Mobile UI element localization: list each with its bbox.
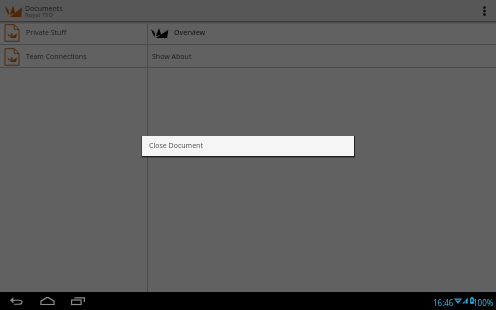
button[interactable]: Close Document <box>142 136 354 156</box>
staticText: Show About <box>152 52 192 62</box>
button[interactable]: Overview <box>148 21 496 45</box>
staticText: Documents <box>25 4 63 14</box>
staticText: Close Document <box>149 141 203 151</box>
staticText: Royal TSD <box>25 11 53 19</box>
staticText: Overview <box>174 28 206 38</box>
button[interactable]: Home <box>34 292 60 310</box>
button[interactable]: Show About <box>148 45 496 68</box>
button[interactable]: Status: 16:46, wifi, battery 100 percent <box>430 292 494 310</box>
button[interactable]: Team Connections <box>0 45 147 68</box>
button[interactable]: Recent apps <box>65 292 91 310</box>
staticText: Team Connections <box>26 52 87 62</box>
staticText: Private Stuff <box>26 28 67 38</box>
button[interactable]: More options <box>475 0 493 21</box>
button[interactable]: Back <box>3 292 29 310</box>
staticText: 100% <box>473 297 494 308</box>
staticText: 16:46 <box>433 297 454 308</box>
button[interactable]: Private Stuff <box>0 21 147 45</box>
